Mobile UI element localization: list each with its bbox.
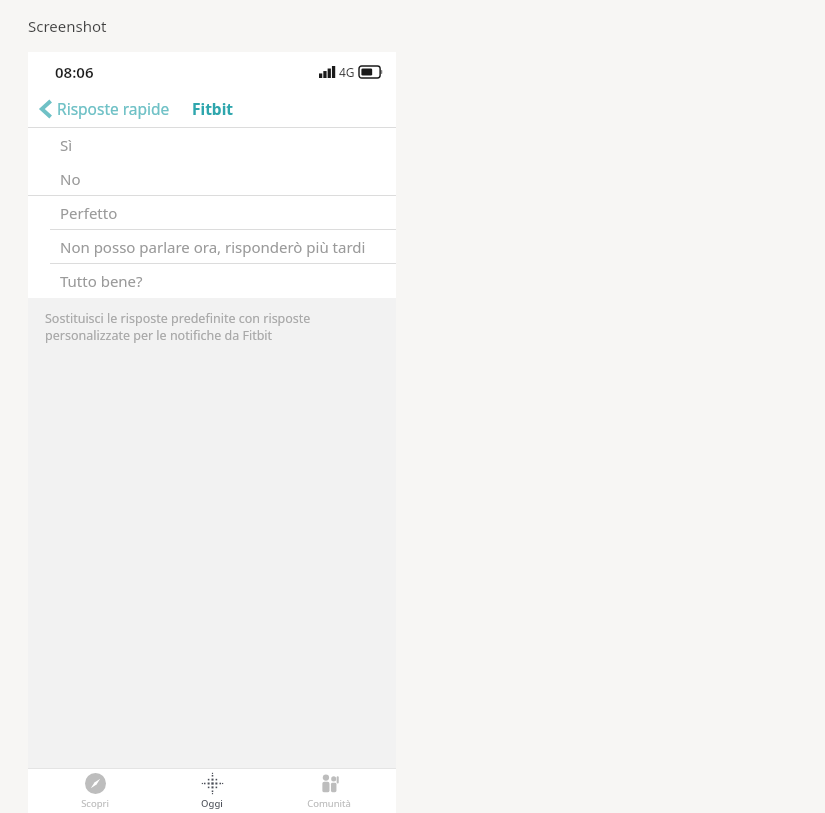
staticText: Oggi <box>201 797 223 810</box>
other: Oggi <box>202 773 223 794</box>
button[interactable]: Sì <box>28 128 396 162</box>
button[interactable]: Back <box>40 98 170 119</box>
staticText: 08:06 <box>55 62 94 82</box>
button[interactable]: Perfetto <box>28 196 396 230</box>
staticText: No <box>60 169 81 189</box>
staticText: Perfetto <box>60 203 118 223</box>
button[interactable]: Tutto bene? <box>28 264 396 298</box>
other: Back <box>40 99 53 119</box>
button[interactable]: No <box>28 162 396 196</box>
staticText: Sostituisci le risposte predefinite con … <box>45 310 311 344</box>
button[interactable]: Comunità <box>279 769 379 813</box>
button[interactable]: Oggi <box>162 769 262 813</box>
staticText: Scopri <box>81 797 109 810</box>
other: Scopri <box>85 773 106 794</box>
staticText: Comunità <box>307 797 351 810</box>
staticText: Screenshot <box>28 16 107 36</box>
staticText: Sì <box>60 135 73 155</box>
staticText: Fitbit <box>192 98 234 119</box>
staticText: Risposte rapide <box>57 98 170 119</box>
staticText: Tutto bene? <box>60 271 143 291</box>
staticText: Non posso parlare ora, risponderò più ta… <box>60 237 366 257</box>
button[interactable]: Non posso parlare ora, risponderò più ta… <box>28 230 396 264</box>
button[interactable]: Scopri <box>45 769 145 813</box>
staticText: 4G <box>339 64 355 80</box>
other: Comunità <box>319 773 340 794</box>
